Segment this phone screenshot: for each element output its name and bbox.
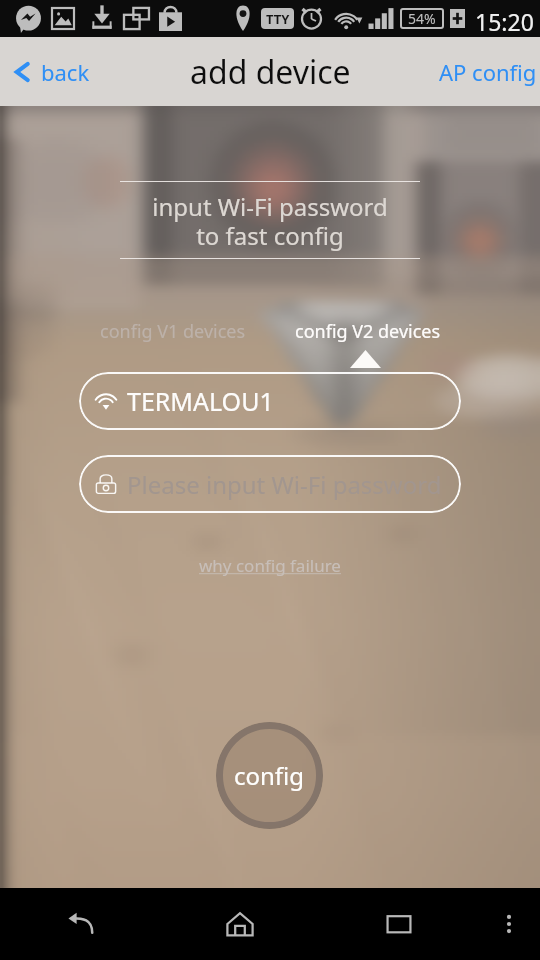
staticText: TERMALOU1 <box>127 384 274 418</box>
staticText: config V2 devices <box>295 319 441 344</box>
staticText: input Wi-Fi password to fast config <box>0 190 540 252</box>
button[interactable]: AP config <box>425 47 540 97</box>
button[interactable]: More options <box>478 888 540 960</box>
button[interactable]: Back <box>0 888 160 960</box>
button[interactable]: Home <box>160 888 319 960</box>
staticText: config <box>234 759 305 792</box>
button[interactable]: back <box>0 47 104 97</box>
button[interactable]: config <box>216 722 323 829</box>
staticText: back <box>41 57 90 87</box>
staticText: config V1 devices <box>100 319 246 344</box>
button[interactable]: Please input Wi-Fi password <box>79 455 461 513</box>
staticText: 54% <box>408 9 436 28</box>
button[interactable]: config V2 devices <box>270 317 465 345</box>
staticText: add device <box>190 50 351 94</box>
button[interactable]: config V1 devices <box>75 317 270 345</box>
staticText: Please input Wi-Fi password <box>127 468 442 501</box>
staticText: TTY <box>266 10 290 28</box>
button[interactable]: Recent apps <box>319 888 478 960</box>
button[interactable]: TERMALOU1 <box>79 372 461 430</box>
staticText: 15:20 <box>475 6 534 37</box>
button[interactable]: why config failure <box>195 550 345 581</box>
